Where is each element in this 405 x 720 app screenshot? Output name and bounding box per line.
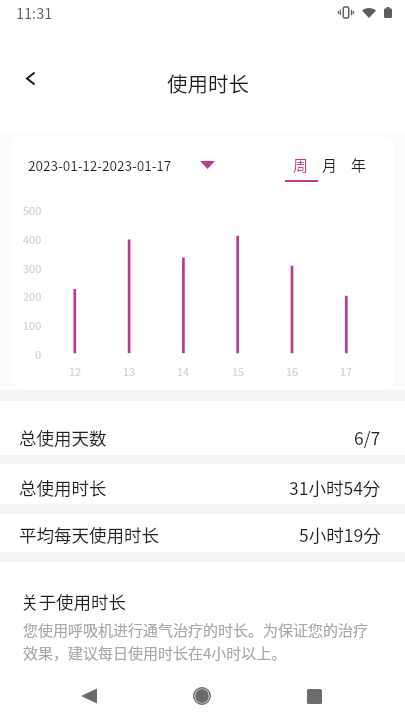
staticText: 300	[23, 260, 42, 276]
staticText: 总使用时长	[19, 475, 107, 500]
staticText: 5小时19分	[299, 522, 381, 547]
button[interactable]: Recent apps	[291, 673, 337, 719]
button[interactable]: 总使用时长	[0, 464, 405, 504]
staticText: 12	[69, 363, 82, 379]
staticText: 6/7	[354, 425, 381, 450]
button[interactable]: Home	[179, 673, 225, 719]
staticText: 11:31	[16, 2, 53, 23]
staticText: 年	[351, 154, 367, 176]
staticText: 平均每天使用时长	[19, 522, 159, 547]
staticText: 2023-01-12-2023-01-17	[28, 155, 172, 175]
button[interactable]: 2023-01-12-2023-01-17	[28, 155, 215, 175]
staticText: 16	[286, 363, 299, 379]
staticText: 500	[23, 202, 42, 218]
staticText: 关于使用时长	[21, 589, 126, 614]
button[interactable]: 年	[341, 154, 377, 182]
button[interactable]: 总使用天数	[0, 401, 405, 455]
staticText: 15	[232, 363, 245, 379]
staticText: 200	[23, 288, 42, 304]
staticText: 400	[23, 231, 42, 247]
staticText: 月	[322, 154, 338, 176]
staticText: 17	[340, 363, 353, 379]
staticText: 使用时长	[167, 68, 249, 98]
button[interactable]: 周	[283, 154, 319, 182]
staticText: 31小时54分	[289, 475, 381, 500]
button[interactable]: 月	[312, 154, 348, 182]
button[interactable]: Back	[66, 673, 112, 719]
staticText: 0	[35, 346, 42, 362]
staticText: 总使用天数	[19, 425, 107, 450]
staticText: 13	[123, 363, 136, 379]
staticText: 您使用呼吸机进行通气治疗的时长。为保证您的治疗效果，建议每日使用时长在4小时以上…	[23, 619, 375, 663]
staticText: 100	[23, 317, 42, 333]
staticText: 周	[293, 154, 309, 176]
staticText: 14	[177, 363, 190, 379]
button[interactable]: Back	[8, 56, 52, 100]
button[interactable]: 平均每天使用时长	[0, 514, 405, 552]
